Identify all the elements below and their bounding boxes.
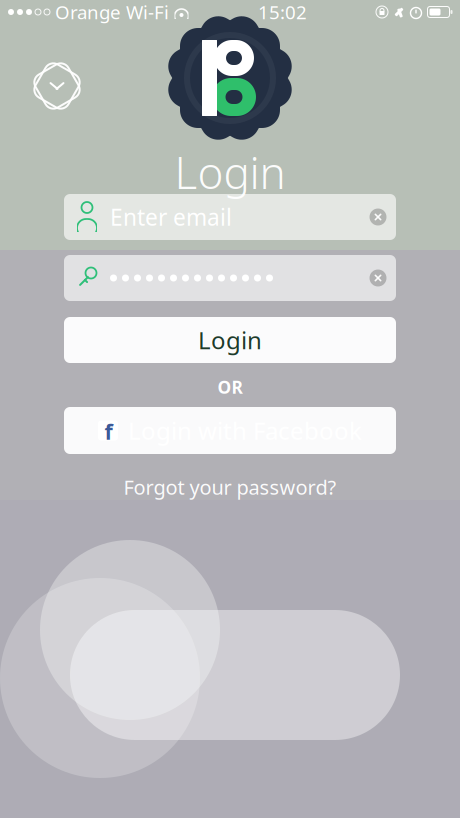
button[interactable]: f <box>64 407 396 454</box>
button[interactable]: Clear text <box>363 263 393 293</box>
staticText: OR <box>217 375 242 398</box>
staticText: 15:02 <box>258 0 307 24</box>
staticText: Enter email <box>110 202 232 232</box>
button[interactable]: Login <box>64 317 396 363</box>
staticText: Login <box>198 324 262 356</box>
button[interactable] <box>64 255 396 301</box>
staticText: f <box>104 417 112 446</box>
button[interactable]: Forgot your password? <box>64 474 396 500</box>
button[interactable]: Clear text <box>363 202 393 232</box>
staticText: Login <box>174 143 285 201</box>
staticText: Orange Wi-Fi <box>55 0 169 24</box>
staticText: Forgot your password? <box>123 474 336 500</box>
button[interactable]: Collapse <box>30 57 84 115</box>
button[interactable]: Enter email <box>64 194 396 240</box>
